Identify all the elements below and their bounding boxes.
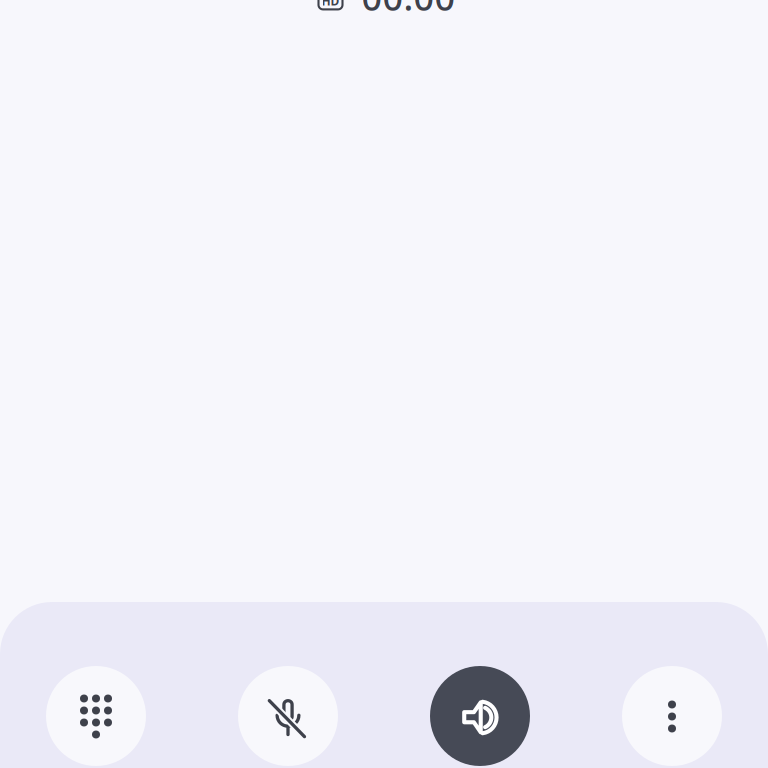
button[interactable]: More options: [622, 666, 722, 766]
staticText: 00:00: [361, 0, 455, 21]
button[interactable]: Dialpad: [46, 666, 146, 766]
staticText: HD: [321, 0, 339, 9]
button[interactable]: Speaker: [430, 666, 530, 766]
button[interactable]: Unmute microphone: [238, 666, 338, 766]
